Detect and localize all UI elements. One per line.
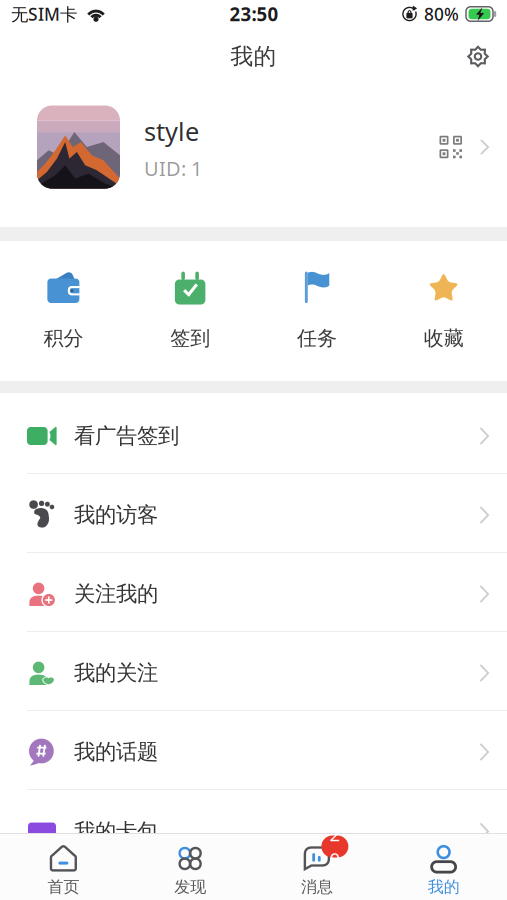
button[interactable]: 我的卡包 [0, 790, 507, 869]
button[interactable]: 设置 [455, 34, 501, 78]
staticText: 20 [329, 822, 340, 871]
staticText: 消息 [301, 877, 333, 897]
button[interactable]: 我的访客 [0, 474, 507, 553]
staticText: 看广告签到 [74, 423, 179, 449]
button[interactable]: 我的关注 [0, 632, 507, 711]
staticText: 无SIM卡 [11, 2, 77, 25]
button[interactable]: 我的话题 [0, 711, 507, 790]
staticText: 我的访客 [74, 502, 158, 528]
staticText: 我的话题 [74, 739, 158, 765]
button[interactable]: 签到 [127, 241, 254, 381]
staticText: 首页 [47, 877, 79, 897]
staticText: 发现 [174, 877, 206, 897]
staticText: 我的卡包 [74, 818, 158, 845]
staticText: 我的关注 [74, 660, 158, 686]
button[interactable]: 发现 [127, 834, 254, 900]
button[interactable]: 看广告签到 [0, 395, 507, 474]
staticText: 我的 [428, 877, 460, 897]
staticText: UID: 1 [144, 155, 202, 182]
staticText: 关注我的 [74, 581, 158, 607]
button[interactable]: style [0, 85, 507, 209]
staticText: 任务 [297, 326, 337, 351]
staticText: 我的 [230, 43, 276, 70]
staticText: 收藏 [424, 326, 464, 351]
button[interactable]: 任务 [253, 241, 380, 381]
staticText: 80% [424, 2, 459, 25]
button[interactable]: 积分 [0, 241, 127, 381]
button[interactable]: 关注我的 [0, 553, 507, 632]
button[interactable]: 我的 [380, 834, 507, 900]
button[interactable]: 首页 [0, 834, 127, 900]
staticText: style [144, 114, 199, 148]
button[interactable]: 收藏 [380, 241, 507, 381]
button[interactable]: 20 [253, 834, 380, 900]
staticText: 23:50 [229, 2, 278, 26]
staticText: 签到 [170, 326, 210, 351]
staticText: 积分 [43, 326, 83, 351]
